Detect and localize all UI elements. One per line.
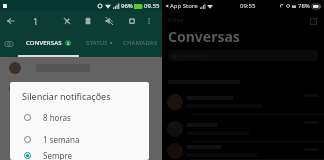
staticText: STATUS <box>86 39 108 47</box>
button[interactable]: New chat <box>308 15 319 26</box>
staticText: 09.55 <box>144 2 160 10</box>
staticText: 1 <box>33 15 39 27</box>
button[interactable]: Editar <box>168 16 185 24</box>
button[interactable]: Mute <box>100 12 118 30</box>
button[interactable] <box>162 88 324 115</box>
staticText: CHAMADAS <box>123 39 158 47</box>
staticText: 2 <box>67 41 70 46</box>
staticText: App Store <box>170 2 198 10</box>
button[interactable]: STATUS <box>79 31 119 57</box>
button[interactable]: CONVERSAS <box>18 31 79 57</box>
staticText: Sempre <box>43 150 72 160</box>
staticText: CONVERSAS <box>26 39 62 47</box>
staticText: Conversas <box>168 27 240 46</box>
button[interactable]: Sempre <box>10 150 149 160</box>
button[interactable] <box>162 115 324 142</box>
button[interactable]: CHAMADAS <box>119 31 161 57</box>
button[interactable] <box>162 64 324 88</box>
staticText: 8 horas <box>43 112 71 123</box>
button[interactable]: 1 semana <box>10 128 149 150</box>
staticText: 1 semana <box>43 134 80 145</box>
staticText: 96% <box>121 2 133 10</box>
button[interactable]: Unpin <box>58 12 76 30</box>
staticText: Silenciar notificações <box>22 90 111 102</box>
button[interactable]: Delete <box>123 12 141 30</box>
button[interactable]: 8 horas <box>10 106 149 128</box>
button[interactable]: Archive <box>79 12 97 30</box>
button[interactable]: More options <box>141 13 157 29</box>
button[interactable] <box>162 142 324 160</box>
staticText: 78% <box>298 2 310 10</box>
button[interactable]: Back <box>2 12 20 30</box>
button[interactable]: Camera <box>0 31 18 57</box>
staticText: 09:55 <box>240 2 256 10</box>
